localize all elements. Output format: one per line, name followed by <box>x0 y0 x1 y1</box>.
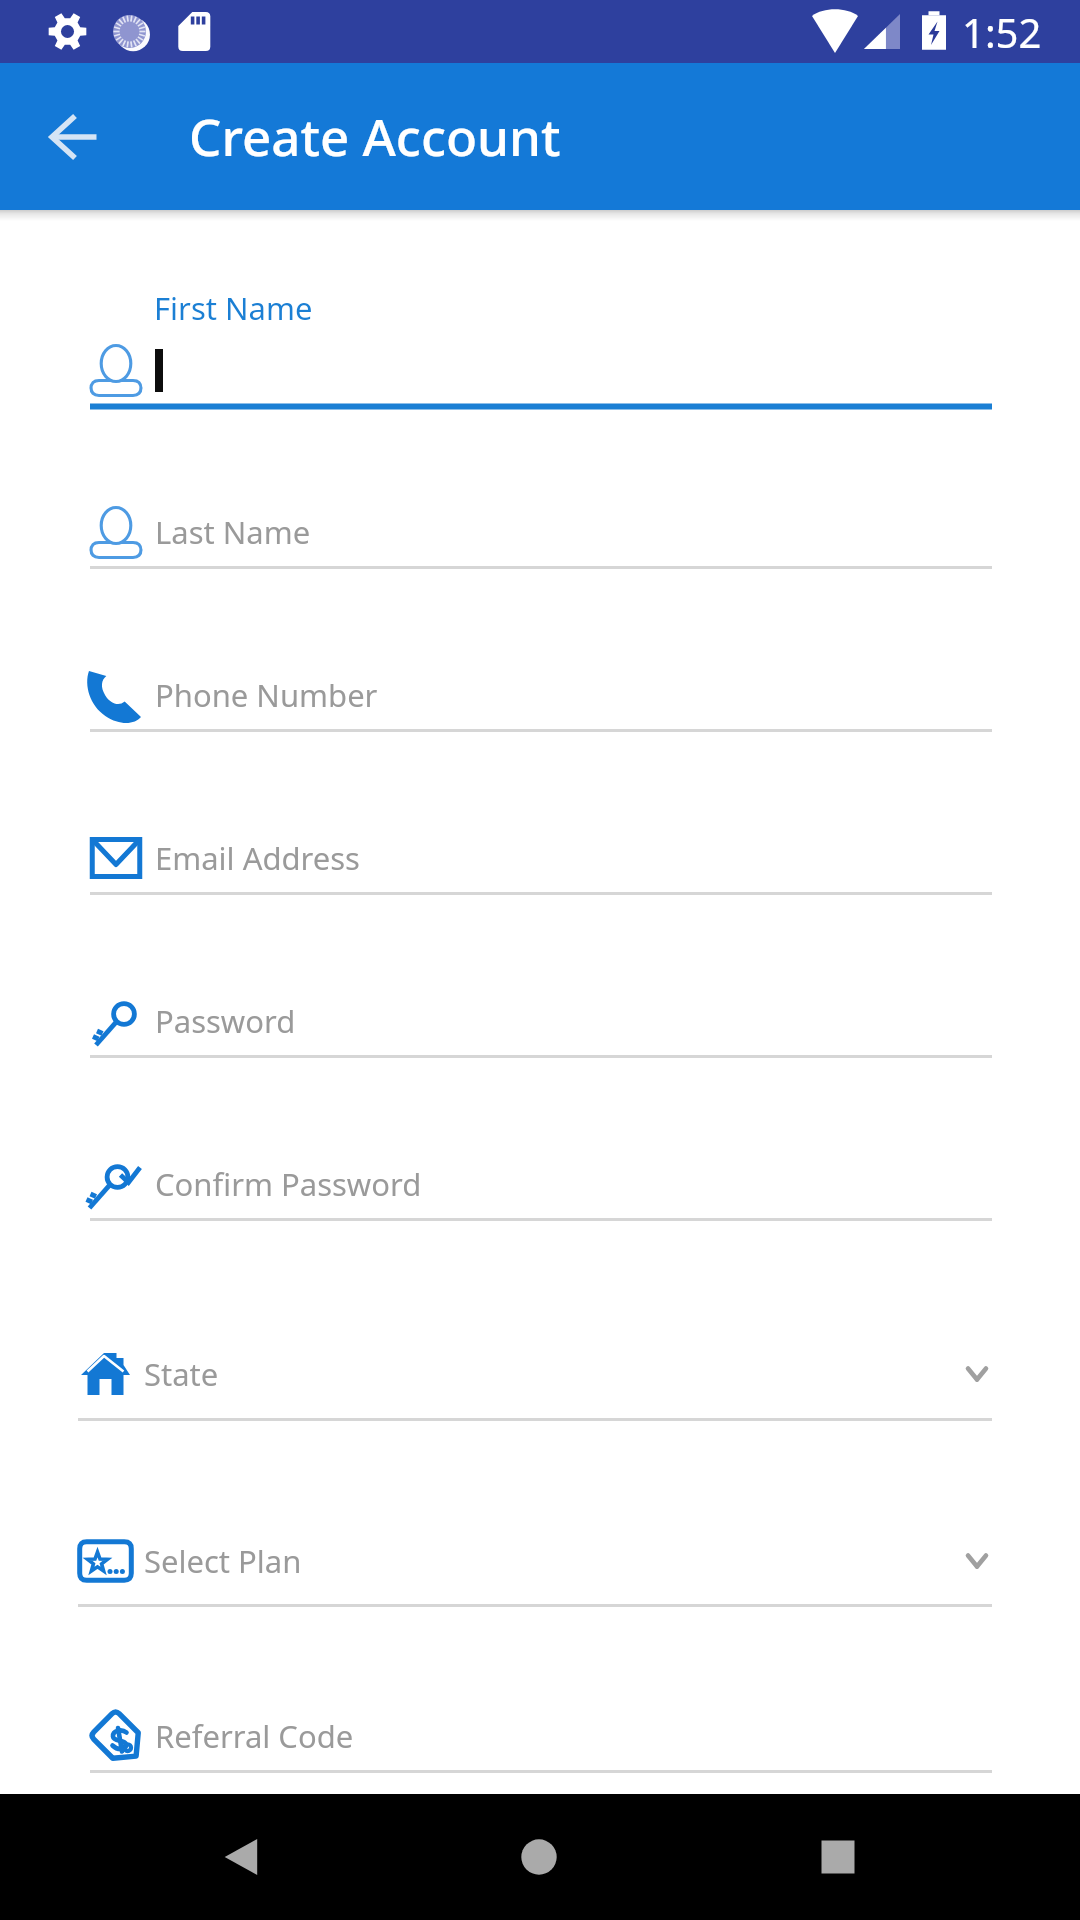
staticText: Email Address <box>155 837 360 879</box>
staticText: Create Account <box>189 101 561 170</box>
button[interactable]: Referral Code <box>90 1680 992 1774</box>
staticText: Referral Code <box>155 1715 354 1757</box>
staticText: State <box>144 1353 219 1395</box>
button[interactable]: Password <box>90 965 992 1059</box>
button[interactable]: State <box>78 1318 992 1422</box>
button[interactable]: Select Plan <box>78 1505 992 1608</box>
staticText: Select Plan <box>144 1540 302 1582</box>
button[interactable]: First Name <box>90 314 992 409</box>
button[interactable]: Phone Number <box>90 639 992 733</box>
staticText: Last Name <box>155 511 311 553</box>
staticText: 1:52 <box>962 5 1042 59</box>
button[interactable]: Email Address <box>90 802 992 896</box>
staticText: Phone Number <box>155 674 378 716</box>
button[interactable]: Back <box>196 1812 286 1902</box>
staticText: Password <box>155 1000 296 1042</box>
button[interactable]: Last Name <box>90 476 992 570</box>
staticText: First Name <box>154 287 313 329</box>
button[interactable]: Back <box>30 94 116 180</box>
staticText: Confirm Password <box>155 1163 422 1205</box>
button[interactable]: Recent apps <box>793 1812 883 1902</box>
button[interactable]: Confirm Password <box>90 1128 992 1222</box>
button[interactable]: Home <box>494 1812 584 1902</box>
